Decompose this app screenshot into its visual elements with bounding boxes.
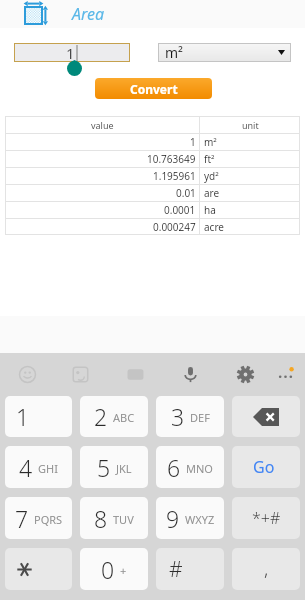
staticText: 2 — [94, 401, 108, 432]
staticText: 0.01 — [176, 186, 196, 200]
button[interactable]: Emoji — [15, 362, 39, 386]
staticText: m² — [165, 43, 183, 62]
staticText: WXYZ — [185, 512, 215, 527]
staticText: TUV — [113, 512, 134, 527]
staticText: 0 — [101, 554, 115, 585]
staticText: 8 — [94, 503, 108, 534]
button[interactable]: 7 — [5, 497, 72, 539]
staticText: PQRS — [34, 512, 63, 527]
button[interactable]: 6 — [156, 446, 224, 488]
staticText: Convert — [130, 81, 178, 97]
staticText: 10.763649 — [147, 152, 196, 166]
button[interactable]: 1 — [14, 43, 130, 62]
staticText: Go — [253, 456, 275, 478]
staticText: 1 — [66, 43, 75, 62]
staticText: ft² — [204, 152, 215, 166]
staticText: 7 — [15, 503, 29, 534]
staticText: 0.000247 — [153, 220, 196, 234]
staticText: + — [120, 563, 127, 578]
staticText: Area — [72, 3, 105, 25]
staticText: 1 — [16, 401, 30, 432]
staticText: m² — [204, 135, 217, 149]
button[interactable]: 2 — [80, 396, 148, 437]
button[interactable]: 9 — [156, 497, 224, 539]
staticText: JKL — [116, 461, 132, 476]
button[interactable]: Backspace — [232, 396, 300, 437]
button[interactable]: 8 — [80, 497, 148, 539]
button[interactable]: Settings — [233, 362, 257, 386]
staticText: 1.195961 — [153, 169, 196, 183]
button[interactable]: # — [156, 548, 224, 590]
staticText: yd² — [204, 169, 219, 183]
button[interactable]: GIF — [123, 362, 147, 386]
button[interactable]: Convert — [95, 78, 212, 99]
button[interactable]: Go — [232, 446, 300, 488]
staticText: 9 — [166, 503, 180, 534]
staticText: , — [264, 556, 269, 582]
staticText: 4 — [19, 452, 33, 483]
button[interactable]: 4 — [5, 446, 72, 488]
staticText: *+# — [252, 507, 281, 529]
staticText: 3 — [171, 401, 185, 432]
staticText: value — [91, 119, 114, 131]
button[interactable]: , — [232, 548, 300, 590]
staticText: # — [169, 555, 183, 584]
button[interactable]: 5 — [80, 446, 148, 488]
staticText: ABC — [113, 410, 135, 425]
button[interactable]: Voice input — [178, 362, 202, 386]
staticText: are — [204, 186, 220, 200]
staticText: 6 — [167, 452, 181, 483]
staticText: 0.0001 — [164, 203, 196, 217]
staticText: acre — [204, 220, 224, 234]
other: Asterisk — [17, 562, 32, 577]
other: Backspace — [253, 408, 279, 426]
staticText: 1 — [190, 135, 196, 149]
button[interactable]: m² — [158, 43, 291, 62]
button[interactable]: *+# — [232, 497, 300, 539]
staticText: GHI — [38, 461, 58, 476]
staticText: ha — [204, 203, 216, 217]
button[interactable]: 0 — [80, 548, 148, 590]
staticText: DEF — [190, 410, 210, 425]
button[interactable]: Asterisk — [5, 548, 72, 590]
staticText: 5 — [97, 452, 111, 483]
staticText: MNO — [186, 461, 213, 476]
button[interactable]: More — [273, 362, 297, 386]
button[interactable]: 3 — [156, 396, 224, 437]
button[interactable]: Sticker — [68, 362, 92, 386]
staticText: unit — [242, 119, 259, 131]
button[interactable]: 1 — [5, 396, 72, 437]
